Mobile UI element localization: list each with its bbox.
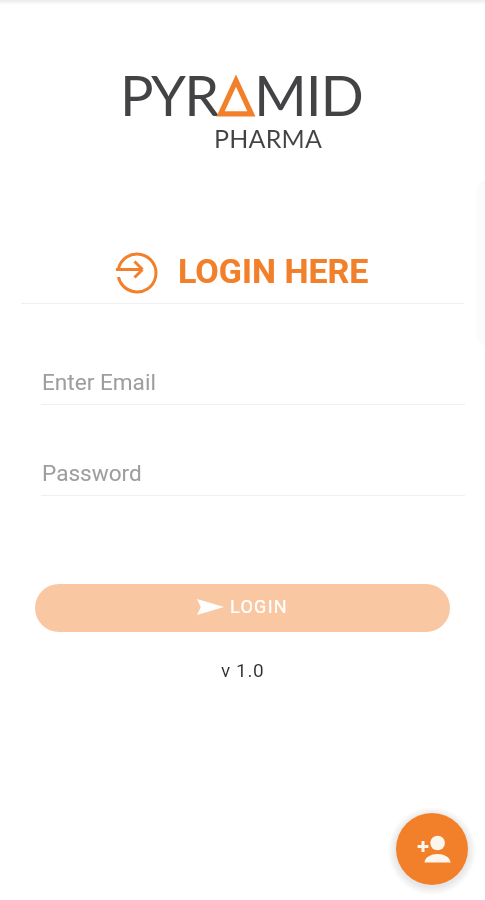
staticText: LOGIN: [230, 596, 289, 617]
staticText: PYR: [120, 61, 218, 128]
staticText: MID: [254, 60, 363, 128]
button[interactable]: LOGIN HERE: [114, 248, 374, 298]
staticText: Enter Email: [42, 369, 156, 395]
staticText: PHARMA: [214, 123, 323, 153]
staticText: Password: [42, 460, 142, 486]
staticText: v 1.0: [221, 659, 265, 681]
button[interactable]: Add user: [396, 813, 468, 885]
button[interactable]: LOGIN: [35, 584, 450, 632]
staticText: LOGIN HERE: [178, 251, 369, 291]
